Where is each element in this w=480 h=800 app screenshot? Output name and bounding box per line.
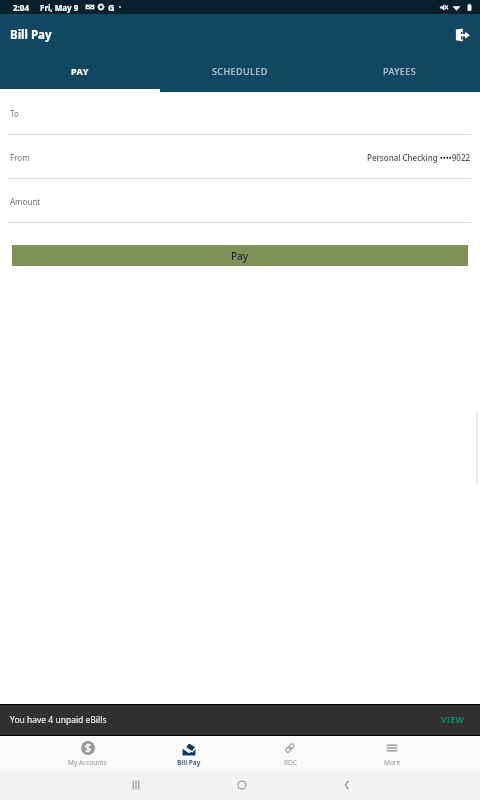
button[interactable]: Home — [226, 772, 257, 800]
button[interactable]: To — [0, 92, 480, 135]
staticText: RDC — [284, 758, 297, 767]
staticText: Bill Pay — [177, 758, 201, 767]
button[interactable]: From — [0, 135, 480, 179]
button[interactable]: SCHEDULED — [160, 56, 320, 92]
staticText: PAYEES — [383, 65, 417, 77]
button[interactable]: Amount — [0, 179, 480, 223]
staticText: G — [108, 1, 115, 13]
staticText: PAY — [71, 65, 89, 77]
button[interactable]: RDC — [239, 736, 341, 772]
staticText: Pay — [231, 249, 249, 263]
button[interactable]: More — [341, 736, 443, 772]
button[interactable]: PAY — [0, 56, 160, 92]
staticText: 2:04 — [13, 2, 29, 13]
button[interactable]: Pay — [12, 245, 468, 266]
button[interactable]: Log out — [447, 20, 477, 50]
button[interactable]: Back — [331, 772, 362, 800]
staticText: Fri, May 9 — [40, 2, 79, 13]
staticText: To — [10, 108, 19, 119]
button[interactable]: My Accounts — [37, 736, 138, 772]
button[interactable]: VIEW — [427, 706, 480, 734]
staticText: My Accounts — [68, 758, 107, 767]
button[interactable]: Recent apps — [120, 772, 151, 800]
staticText: From — [10, 152, 30, 163]
staticText: Amount — [10, 196, 41, 207]
button[interactable]: PAYEES — [320, 56, 480, 92]
staticText: More — [384, 758, 401, 767]
staticText: Personal Checking ••••9022 — [367, 152, 471, 163]
staticText: You have 4 unpaid eBills — [10, 714, 107, 726]
button[interactable]: Bill Pay — [138, 736, 239, 772]
staticText: SCHEDULED — [212, 65, 268, 77]
staticText: VIEW — [441, 714, 465, 726]
staticText: Bill Pay — [10, 27, 52, 43]
